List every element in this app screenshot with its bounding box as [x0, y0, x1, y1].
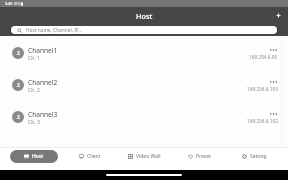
staticText: Setting — [250, 153, 267, 160]
staticText: Client — [87, 153, 101, 160]
staticText: 169.254.6.102 — [247, 118, 278, 124]
button[interactable]: Channel2 — [0, 69, 288, 101]
button[interactable]: More options — [269, 110, 277, 118]
staticText: Ch. 3 — [28, 119, 40, 126]
staticText: Ch. 2 — [28, 87, 40, 94]
button[interactable]: Video Wall — [124, 150, 165, 163]
button[interactable]: Setting — [238, 150, 271, 163]
staticText: 169.254.6.95 — [249, 54, 278, 60]
staticText: Host — [136, 11, 153, 21]
button[interactable]: Add host — [272, 9, 284, 21]
staticText: 169.254.6.103 — [247, 86, 278, 92]
staticText: Host — [32, 153, 44, 160]
button[interactable]: Channel1 — [0, 37, 288, 69]
button[interactable]: Preset — [184, 150, 215, 163]
staticText: Channel3 — [28, 110, 58, 119]
button[interactable]: More options — [269, 46, 277, 54]
staticText: Host name, Channel, IP... — [26, 27, 82, 34]
staticText: Channel1 — [28, 46, 58, 55]
staticText: Channel2 — [28, 78, 58, 87]
staticText: Ch. 1 — [28, 55, 40, 62]
button[interactable]: More options — [269, 78, 277, 86]
button[interactable]: Channel3 — [0, 101, 288, 133]
button[interactable]: Host name, Channel, IP... — [11, 26, 277, 34]
staticText: 3:45 — [5, 1, 13, 6]
button[interactable]: Client — [75, 150, 105, 163]
staticText: Preset — [196, 153, 211, 160]
staticText: Video Wall — [136, 153, 161, 160]
button[interactable]: Host — [10, 150, 58, 163]
